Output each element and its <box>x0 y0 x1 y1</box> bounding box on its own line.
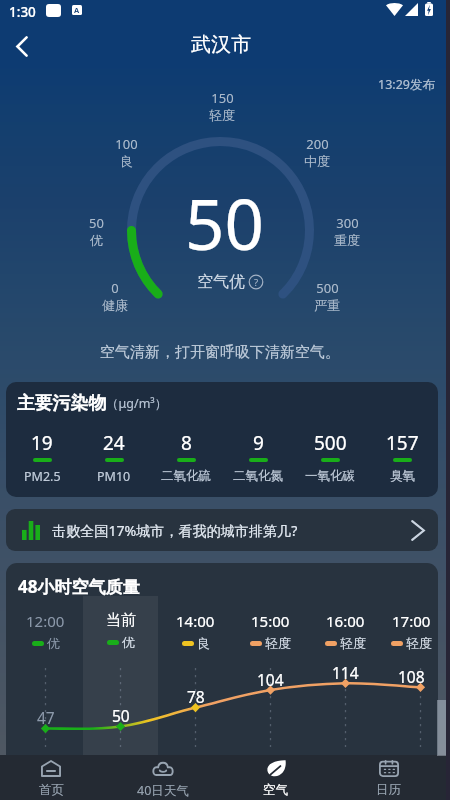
staticText: 1:30 <box>9 3 36 21</box>
staticText: PM10 <box>97 468 131 485</box>
staticText: 78 <box>187 686 205 707</box>
button[interactable]: 24 <box>78 430 150 485</box>
staticText: 主要污染物 <box>17 392 106 414</box>
staticText: 40日天气 <box>137 782 189 799</box>
staticText: 日历 <box>376 782 401 798</box>
staticText: 12:00 <box>26 611 65 631</box>
staticText: 重度 <box>334 232 360 248</box>
staticText: 17:00 <box>392 611 431 631</box>
staticText: 9 <box>253 430 264 456</box>
staticText: 300 <box>336 214 359 232</box>
staticText: 优 <box>122 634 135 650</box>
staticText: 50 <box>185 176 264 270</box>
staticText: 50 <box>89 214 104 232</box>
staticText: 24 <box>103 430 125 456</box>
staticText: 轻度 <box>340 635 366 651</box>
button[interactable]: 空气 <box>219 755 332 800</box>
staticText: 优 <box>47 635 60 651</box>
button[interactable]: 40日天气 <box>107 755 219 800</box>
staticText: 良 <box>120 153 133 169</box>
button[interactable]: 500 <box>294 430 366 484</box>
staticText: 轻度 <box>209 107 235 123</box>
staticText: 0 <box>111 279 119 297</box>
staticText: 二氧化氮 <box>233 468 283 484</box>
staticText: 健康 <box>102 297 128 313</box>
staticText: 19 <box>31 430 53 456</box>
staticText: 50 <box>112 705 130 726</box>
staticText: 良 <box>197 635 210 651</box>
staticText: 100 <box>115 135 138 153</box>
staticText: 空气优 <box>197 272 245 292</box>
staticText: 114 <box>332 662 359 683</box>
staticText: 108 <box>398 666 425 687</box>
staticText: 优 <box>90 232 103 248</box>
staticText: 104 <box>257 669 284 690</box>
staticText: 500 <box>316 279 339 297</box>
staticText: 臭氧 <box>390 468 415 484</box>
button[interactable]: 9 <box>222 430 294 484</box>
staticText: ? <box>254 276 259 289</box>
button[interactable]: 首页 <box>0 755 107 800</box>
staticText: 47 <box>37 707 55 728</box>
button[interactable]: 空气优 <box>197 272 264 292</box>
staticText: 一氧化碳 <box>305 468 355 484</box>
staticText: 轻度 <box>265 635 291 651</box>
button[interactable]: 19 <box>6 430 78 485</box>
button[interactable]: 8 <box>150 430 222 484</box>
button[interactable]: 日历 <box>332 755 445 800</box>
staticText: 当前 <box>106 611 136 630</box>
staticText: 首页 <box>39 782 64 798</box>
staticText: 14:00 <box>176 611 215 631</box>
staticText: 空气清新，打开窗呼吸下清新空气。 <box>100 343 340 362</box>
staticText: 空气 <box>263 782 288 798</box>
staticText: 200 <box>306 135 329 153</box>
staticText: （μg/m³） <box>106 395 168 412</box>
staticText: 二氧化硫 <box>161 468 211 484</box>
staticText: 8 <box>181 430 192 456</box>
staticText: A <box>74 5 80 15</box>
staticText: 严重 <box>314 297 340 313</box>
button[interactable]: 157 <box>366 430 438 484</box>
staticText: 击败全国17%城市，看我的城市排第几? <box>52 521 298 540</box>
staticText: PM2.5 <box>24 468 61 485</box>
staticText: 157 <box>386 430 419 456</box>
staticText: 48小时空气质量 <box>18 575 140 598</box>
staticText: 中度 <box>304 153 330 169</box>
staticText: 150 <box>211 89 234 107</box>
button[interactable]: 击败全国17%城市，看我的城市排第几? <box>6 509 438 551</box>
staticText: 13:29发布 <box>378 76 435 93</box>
staticText: 轻度 <box>406 635 432 651</box>
staticText: 武汉市 <box>191 32 251 57</box>
staticText: 500 <box>314 430 347 456</box>
staticText: 16:00 <box>326 611 365 631</box>
button[interactable]: Back <box>0 24 44 68</box>
staticText: 15:00 <box>251 611 290 631</box>
